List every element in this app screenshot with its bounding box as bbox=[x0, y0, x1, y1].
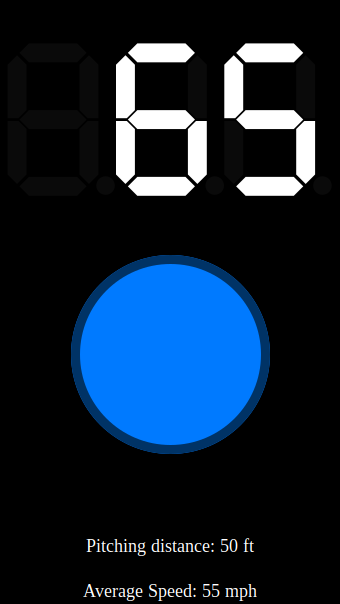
staticText: Pitching distance: 50 ft bbox=[86, 536, 254, 556]
button[interactable]: Start measuring bbox=[71, 255, 270, 454]
staticText: Average Speed: 55 mph bbox=[83, 581, 257, 601]
